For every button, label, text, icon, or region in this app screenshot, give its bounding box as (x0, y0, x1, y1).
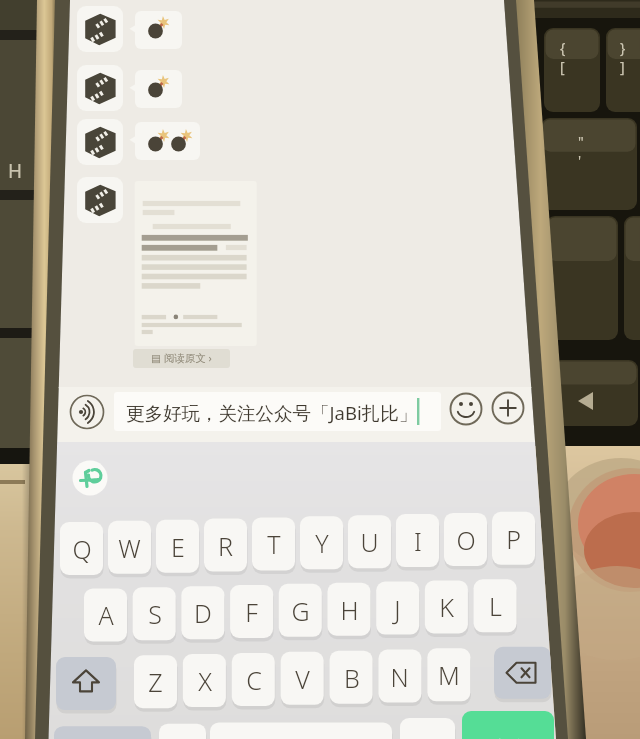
button[interactable]: I (396, 514, 439, 567)
staticText: F (245, 595, 258, 629)
button[interactable]: 发送 (462, 710, 553, 739)
button[interactable]: W (108, 521, 151, 574)
button[interactable]: P (492, 512, 535, 565)
staticText: S (148, 597, 162, 631)
button[interactable]: C (232, 653, 275, 706)
button[interactable]: H (328, 583, 371, 636)
staticText: M (438, 658, 460, 692)
staticText: Q (72, 532, 92, 566)
button[interactable]: R (204, 519, 247, 572)
staticText: } ] (620, 38, 626, 76)
button[interactable]: ▤ 阅读原文 › (133, 349, 230, 367)
button[interactable]: Z (134, 655, 177, 708)
button[interactable]: O (444, 513, 487, 566)
button[interactable]: L (474, 579, 517, 632)
staticText: O (456, 523, 476, 557)
button[interactable]: K (425, 580, 468, 633)
staticText: X (198, 664, 212, 698)
button[interactable]: A (84, 588, 127, 641)
staticText: 更多好玩，关注公众号「JaBi扎比」 (126, 400, 418, 425)
button[interactable]: E (156, 520, 199, 573)
button[interactable]: J (376, 582, 419, 635)
staticText: B (344, 661, 360, 695)
button[interactable]: X (183, 654, 226, 707)
button[interactable]: Q (60, 522, 103, 575)
button[interactable]: U (348, 515, 391, 568)
staticText: P (506, 522, 521, 556)
staticText: N (390, 660, 409, 694)
button[interactable]: N (378, 650, 421, 703)
button[interactable]: Backspace (494, 647, 551, 699)
staticText: U (360, 525, 379, 559)
staticText: " ' (578, 132, 584, 170)
staticText: A (98, 598, 114, 632)
button[interactable]: F (230, 585, 273, 638)
button[interactable]: Voice message (70, 395, 104, 429)
button[interactable]: G (279, 584, 322, 637)
staticText: J (394, 592, 401, 626)
button[interactable]: M (427, 648, 470, 701)
staticText: { [ (560, 38, 566, 76)
staticText: D (194, 596, 212, 630)
button[interactable]: 更多好玩，关注公众号「JaBi扎比」 (114, 393, 441, 431)
button[interactable]: Y (300, 516, 343, 569)
staticText: T (267, 527, 281, 561)
staticText: C (246, 663, 262, 697)
staticText: K (439, 590, 454, 624)
staticText: 发送 (493, 737, 523, 739)
button[interactable]: S (133, 587, 176, 640)
staticText: R (218, 529, 233, 563)
staticText: Z (148, 665, 163, 699)
staticText: G (291, 594, 310, 628)
button[interactable]: B (330, 651, 373, 704)
button[interactable]: More (492, 392, 524, 424)
staticText: V (295, 662, 310, 696)
button[interactable]: D (181, 586, 224, 639)
staticText: W (118, 531, 141, 565)
staticText: ▤ 阅读原文 › (151, 351, 212, 365)
button[interactable]: Shift (56, 657, 116, 710)
button[interactable]: T (252, 517, 295, 570)
staticText: Y (315, 526, 329, 560)
staticText: I (414, 524, 422, 558)
staticText: L (489, 589, 502, 623)
staticText: H (8, 158, 23, 184)
button[interactable]: Emoji (450, 393, 482, 425)
staticText: H (340, 593, 359, 627)
staticText: E (171, 530, 185, 564)
button[interactable]: V (281, 652, 324, 705)
